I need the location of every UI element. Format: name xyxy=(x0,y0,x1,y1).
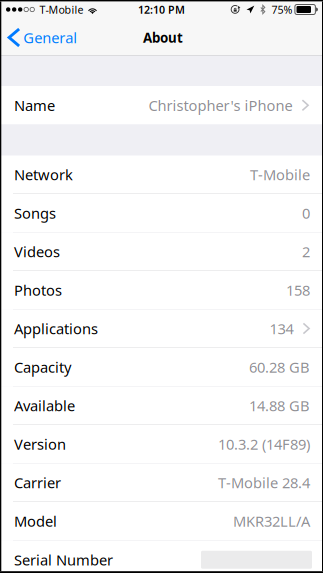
staticText: Serial Number xyxy=(14,550,113,569)
button[interactable]: Network xyxy=(0,155,323,194)
staticText: T-Mobile 28.4 xyxy=(218,473,310,492)
staticText: 158 xyxy=(286,280,310,300)
staticText: Christopher's iPhone xyxy=(148,95,292,115)
button[interactable]: Applications xyxy=(0,309,323,348)
staticText: General xyxy=(23,28,77,47)
button[interactable]: Model xyxy=(0,502,323,540)
staticText: Name xyxy=(14,95,55,115)
staticText: MKR32LL/A xyxy=(233,511,310,531)
button[interactable]: Songs xyxy=(0,194,323,232)
staticText: 10.3.2 (14F89) xyxy=(218,434,310,454)
staticText: 0 xyxy=(302,203,310,223)
button[interactable]: Photos xyxy=(0,271,323,309)
staticText: Version xyxy=(14,434,66,454)
staticText: Network xyxy=(14,165,73,184)
staticText: Carrier xyxy=(14,473,61,492)
staticText: 134 xyxy=(269,319,293,338)
staticText: Songs xyxy=(14,203,56,223)
button[interactable]: Videos xyxy=(0,232,323,271)
staticText: 75% xyxy=(271,2,292,17)
button[interactable]: General xyxy=(0,19,85,55)
staticText: 2 xyxy=(302,242,310,261)
button[interactable]: Version xyxy=(0,425,323,463)
staticText: Applications xyxy=(14,319,98,338)
button[interactable]: Available xyxy=(0,386,323,425)
button[interactable]: Serial Number xyxy=(0,540,323,573)
staticText: Videos xyxy=(14,242,60,261)
staticText: T-Mobile xyxy=(39,2,83,17)
staticText: T-Mobile xyxy=(250,165,310,184)
button[interactable]: Capacity xyxy=(0,348,323,386)
staticText: 14.88 GB xyxy=(249,396,310,415)
staticText: About xyxy=(143,29,183,46)
button[interactable]: Carrier xyxy=(0,463,323,502)
staticText: 60.28 GB xyxy=(249,357,310,377)
staticText: Photos xyxy=(14,280,62,300)
button[interactable]: Name xyxy=(0,86,323,124)
staticText: Model xyxy=(14,511,57,531)
staticText: Capacity xyxy=(14,357,71,377)
staticText: 12:10 PM xyxy=(138,2,185,17)
staticText: Available xyxy=(14,396,75,415)
